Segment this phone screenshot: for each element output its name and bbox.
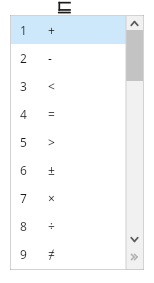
button[interactable]: 7 bbox=[11, 184, 126, 212]
button[interactable]: 4 bbox=[11, 100, 126, 128]
staticText: 3 bbox=[20, 78, 27, 94]
staticText: 7 bbox=[20, 190, 27, 206]
staticText: + bbox=[48, 22, 55, 38]
staticText: 6 bbox=[20, 162, 27, 178]
staticText: 4 bbox=[20, 106, 27, 122]
staticText: < bbox=[48, 78, 55, 94]
staticText: > bbox=[48, 134, 55, 150]
staticText: ± bbox=[48, 162, 55, 178]
button[interactable]: 8 bbox=[11, 212, 126, 240]
staticText: 5 bbox=[20, 134, 27, 150]
staticText: ≠ bbox=[48, 246, 55, 262]
staticText: 2 bbox=[20, 50, 27, 66]
button[interactable]: 3 bbox=[11, 72, 126, 100]
button[interactable]: Scroll up bbox=[126, 16, 143, 30]
staticText: 9 bbox=[20, 246, 27, 262]
button[interactable]: 5 bbox=[11, 128, 126, 156]
staticText: 1 bbox=[20, 22, 27, 38]
button[interactable]: 2 bbox=[11, 44, 126, 72]
button[interactable]: Square image of bbox=[58, 2, 71, 13]
staticText: 8 bbox=[20, 218, 27, 234]
staticText: ÷ bbox=[48, 218, 55, 234]
staticText: × bbox=[48, 190, 55, 206]
button[interactable]: Scroll down bbox=[126, 232, 143, 246]
staticText: = bbox=[48, 106, 55, 122]
button[interactable]: 1 bbox=[11, 16, 126, 44]
button[interactable]: 6 bbox=[11, 156, 126, 184]
button[interactable]: 9 bbox=[11, 240, 126, 268]
button[interactable]: More bbox=[126, 250, 143, 264]
staticText: - bbox=[48, 50, 52, 66]
